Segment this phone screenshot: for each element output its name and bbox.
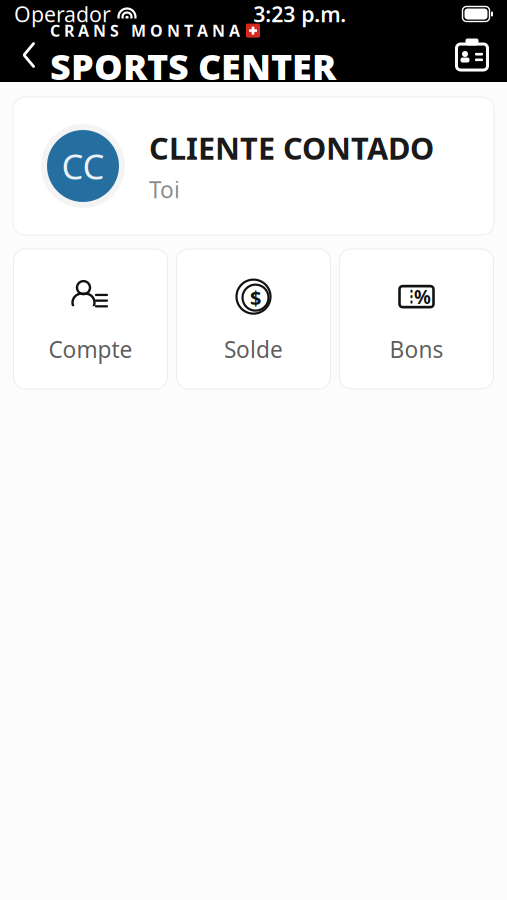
staticText: Operador: [14, 0, 111, 28]
staticText: CC: [61, 143, 104, 189]
button[interactable]: Back: [8, 28, 50, 82]
staticText: Bons: [389, 334, 443, 364]
staticText: CLIENTE CONTADO: [149, 128, 434, 168]
button[interactable]: %: [339, 249, 493, 389]
staticText: %: [414, 284, 431, 309]
button[interactable]: Membership card: [445, 28, 499, 82]
staticText: 3:23 p.m.: [253, 0, 346, 28]
staticText: Compte: [48, 334, 132, 364]
button[interactable]: $: [176, 249, 330, 389]
staticText: $: [250, 284, 261, 311]
button[interactable]: Compte: [13, 249, 167, 389]
staticText: Solde: [224, 334, 283, 364]
staticText: C R A N S M O N T A N A: [50, 20, 240, 41]
button[interactable]: CC: [13, 97, 494, 235]
staticText: SPORTS CENTER: [50, 42, 336, 90]
staticText: Toi: [149, 174, 180, 204]
